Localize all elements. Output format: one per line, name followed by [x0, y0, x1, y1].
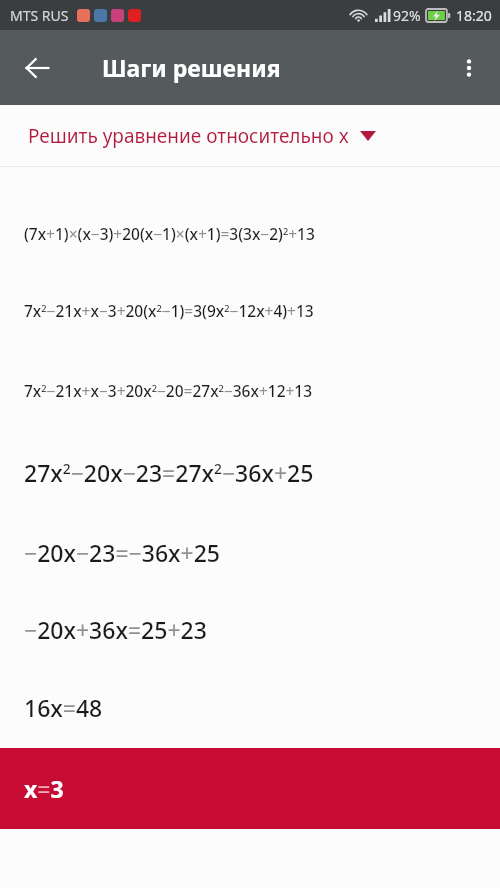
- button[interactable]: x=3: [0, 748, 500, 829]
- button[interactable]: Решить уравнение относительно x: [0, 105, 500, 166]
- staticText: 18:20: [456, 6, 492, 25]
- staticText: 16x=48: [24, 692, 103, 723]
- staticText: −20x−23=−36x+25: [24, 537, 221, 568]
- staticText: −20x+36x=25+23: [24, 614, 207, 645]
- staticText: 27x2−20x−23=27x2−36x+25: [24, 457, 314, 488]
- staticText: 92%: [393, 6, 421, 25]
- staticText: 7x2−21x+x−3+20(x2−1)=3(9x2−12x+4)+13: [24, 300, 314, 321]
- staticText: x=3: [24, 773, 64, 804]
- button[interactable]: Back: [14, 45, 60, 91]
- staticText: 7x2−21x+x−3+20x2−20=27x2−36x+12+13: [24, 380, 313, 401]
- staticText: MTS RUS: [10, 6, 69, 25]
- staticText: Решить уравнение относительно x: [28, 123, 349, 149]
- staticText: (7x+1)×(x−3)+20(x−1)×(x+1)=3(3x−2)2+13: [24, 223, 315, 244]
- staticText: Шаги решения: [102, 52, 281, 83]
- button[interactable]: More options: [447, 46, 491, 90]
